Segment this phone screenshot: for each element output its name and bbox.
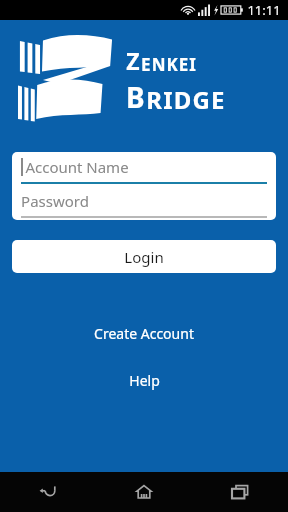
staticText: Help [129,371,160,390]
staticText: Login [124,247,164,267]
staticText: RIDGE [146,83,226,116]
button[interactable]: Login [12,240,276,273]
staticText: 11:11 [247,1,281,19]
button[interactable]: Home [96,472,192,512]
button[interactable]: Recent apps [192,472,288,512]
button[interactable]: Back [0,472,96,512]
button[interactable]: Password [12,186,276,220]
button[interactable]: Account Name [12,152,276,186]
staticText: Create Account [94,324,194,343]
staticText: B [126,78,146,116]
staticText: Z [126,45,141,76]
button[interactable]: Help [0,368,288,393]
staticText: Password [21,191,89,211]
staticText: Account Name [25,157,129,177]
staticText: ENKEI [141,53,197,76]
button[interactable]: Create Account [0,321,288,346]
